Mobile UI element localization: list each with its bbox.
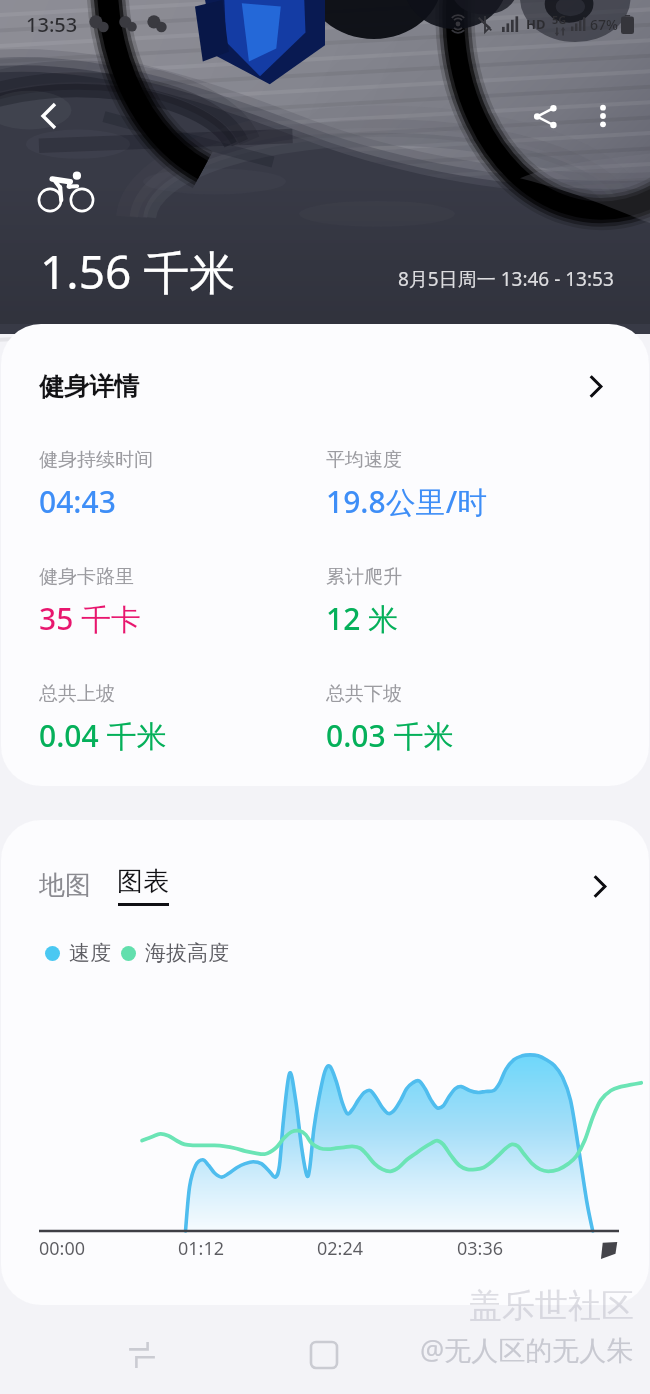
button[interactable]: Back (468, 1317, 544, 1393)
staticText: 03:36 (457, 1236, 504, 1261)
staticText: 0.04 千米 (39, 715, 167, 756)
staticText: 盖乐世社区 (469, 1285, 634, 1327)
staticText: 35 千卡 (39, 598, 142, 639)
staticText: 5G (552, 12, 567, 27)
button[interactable]: 地图 (33, 865, 97, 906)
staticText: 12 米 (326, 598, 399, 639)
staticText: 健身详情 (39, 371, 139, 402)
staticText: 02:24 (317, 1236, 364, 1261)
staticText: 67% (590, 15, 618, 34)
staticText: 00:00 (39, 1236, 86, 1261)
staticText: 健身持续时间 (39, 448, 153, 472)
button[interactable]: Share (518, 89, 572, 143)
button[interactable]: Back (22, 89, 76, 143)
staticText: 8月5日周一 13:46 - 13:53 (398, 266, 614, 292)
staticText: 13:53 (26, 11, 78, 38)
staticText: 图表 (117, 865, 169, 898)
button[interactable]: Home (286, 1317, 362, 1393)
staticText: 平均速度 (326, 448, 402, 472)
staticText: @无人区的无人朱 (420, 1331, 634, 1368)
staticText: 海拔高度 (145, 940, 229, 966)
staticText: 0.03 千米 (326, 715, 454, 756)
button[interactable]: Open chart (579, 866, 619, 906)
staticText: HD (526, 15, 546, 33)
staticText: 累计爬升 (326, 565, 402, 589)
button[interactable]: 图表 (111, 861, 175, 910)
staticText: 总共上坡 (39, 682, 115, 706)
button[interactable]: More options (576, 89, 630, 143)
button[interactable]: 健身详情 (1, 324, 649, 405)
staticText: 1.56 千米 (40, 240, 236, 303)
staticText: 健身卡路里 (39, 565, 134, 589)
staticText: 速度 (69, 940, 111, 966)
staticText: 19.8公里/时 (326, 481, 488, 522)
staticText: 总共下坡 (326, 682, 402, 706)
staticText: 04:43 (39, 481, 116, 522)
staticText: 01:12 (178, 1236, 225, 1261)
staticText: 地图 (39, 869, 91, 902)
button[interactable]: Recent apps (104, 1317, 180, 1393)
